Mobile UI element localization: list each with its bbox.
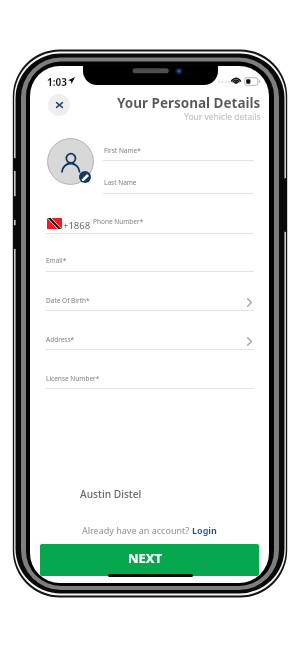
staticText: 1:03 <box>47 75 67 89</box>
staticText: Already have an account? <box>82 524 192 536</box>
staticText: Your Personal Details <box>117 94 261 112</box>
staticText: Date Of Birth* <box>46 296 90 305</box>
staticText: First Name* <box>104 146 141 155</box>
button[interactable]: NEXT <box>40 544 259 576</box>
button[interactable]: Login <box>192 524 217 536</box>
button[interactable]: Open <box>242 295 256 309</box>
staticText: Last Name <box>104 178 137 187</box>
staticText: Austin Distel <box>80 487 142 501</box>
staticText: Address* <box>46 335 75 344</box>
button[interactable]: Edit photo <box>79 171 91 183</box>
staticText: +1868 <box>63 219 91 232</box>
button[interactable]: Close <box>48 94 70 116</box>
staticText: NEXT <box>128 549 163 567</box>
staticText: Email* <box>46 256 67 265</box>
staticText: Login <box>192 524 217 536</box>
staticText: License Number* <box>46 374 100 383</box>
button[interactable]: Open <box>242 334 256 348</box>
staticText: Phone Number* <box>93 217 144 226</box>
staticText: Your vehicle details <box>184 111 261 123</box>
